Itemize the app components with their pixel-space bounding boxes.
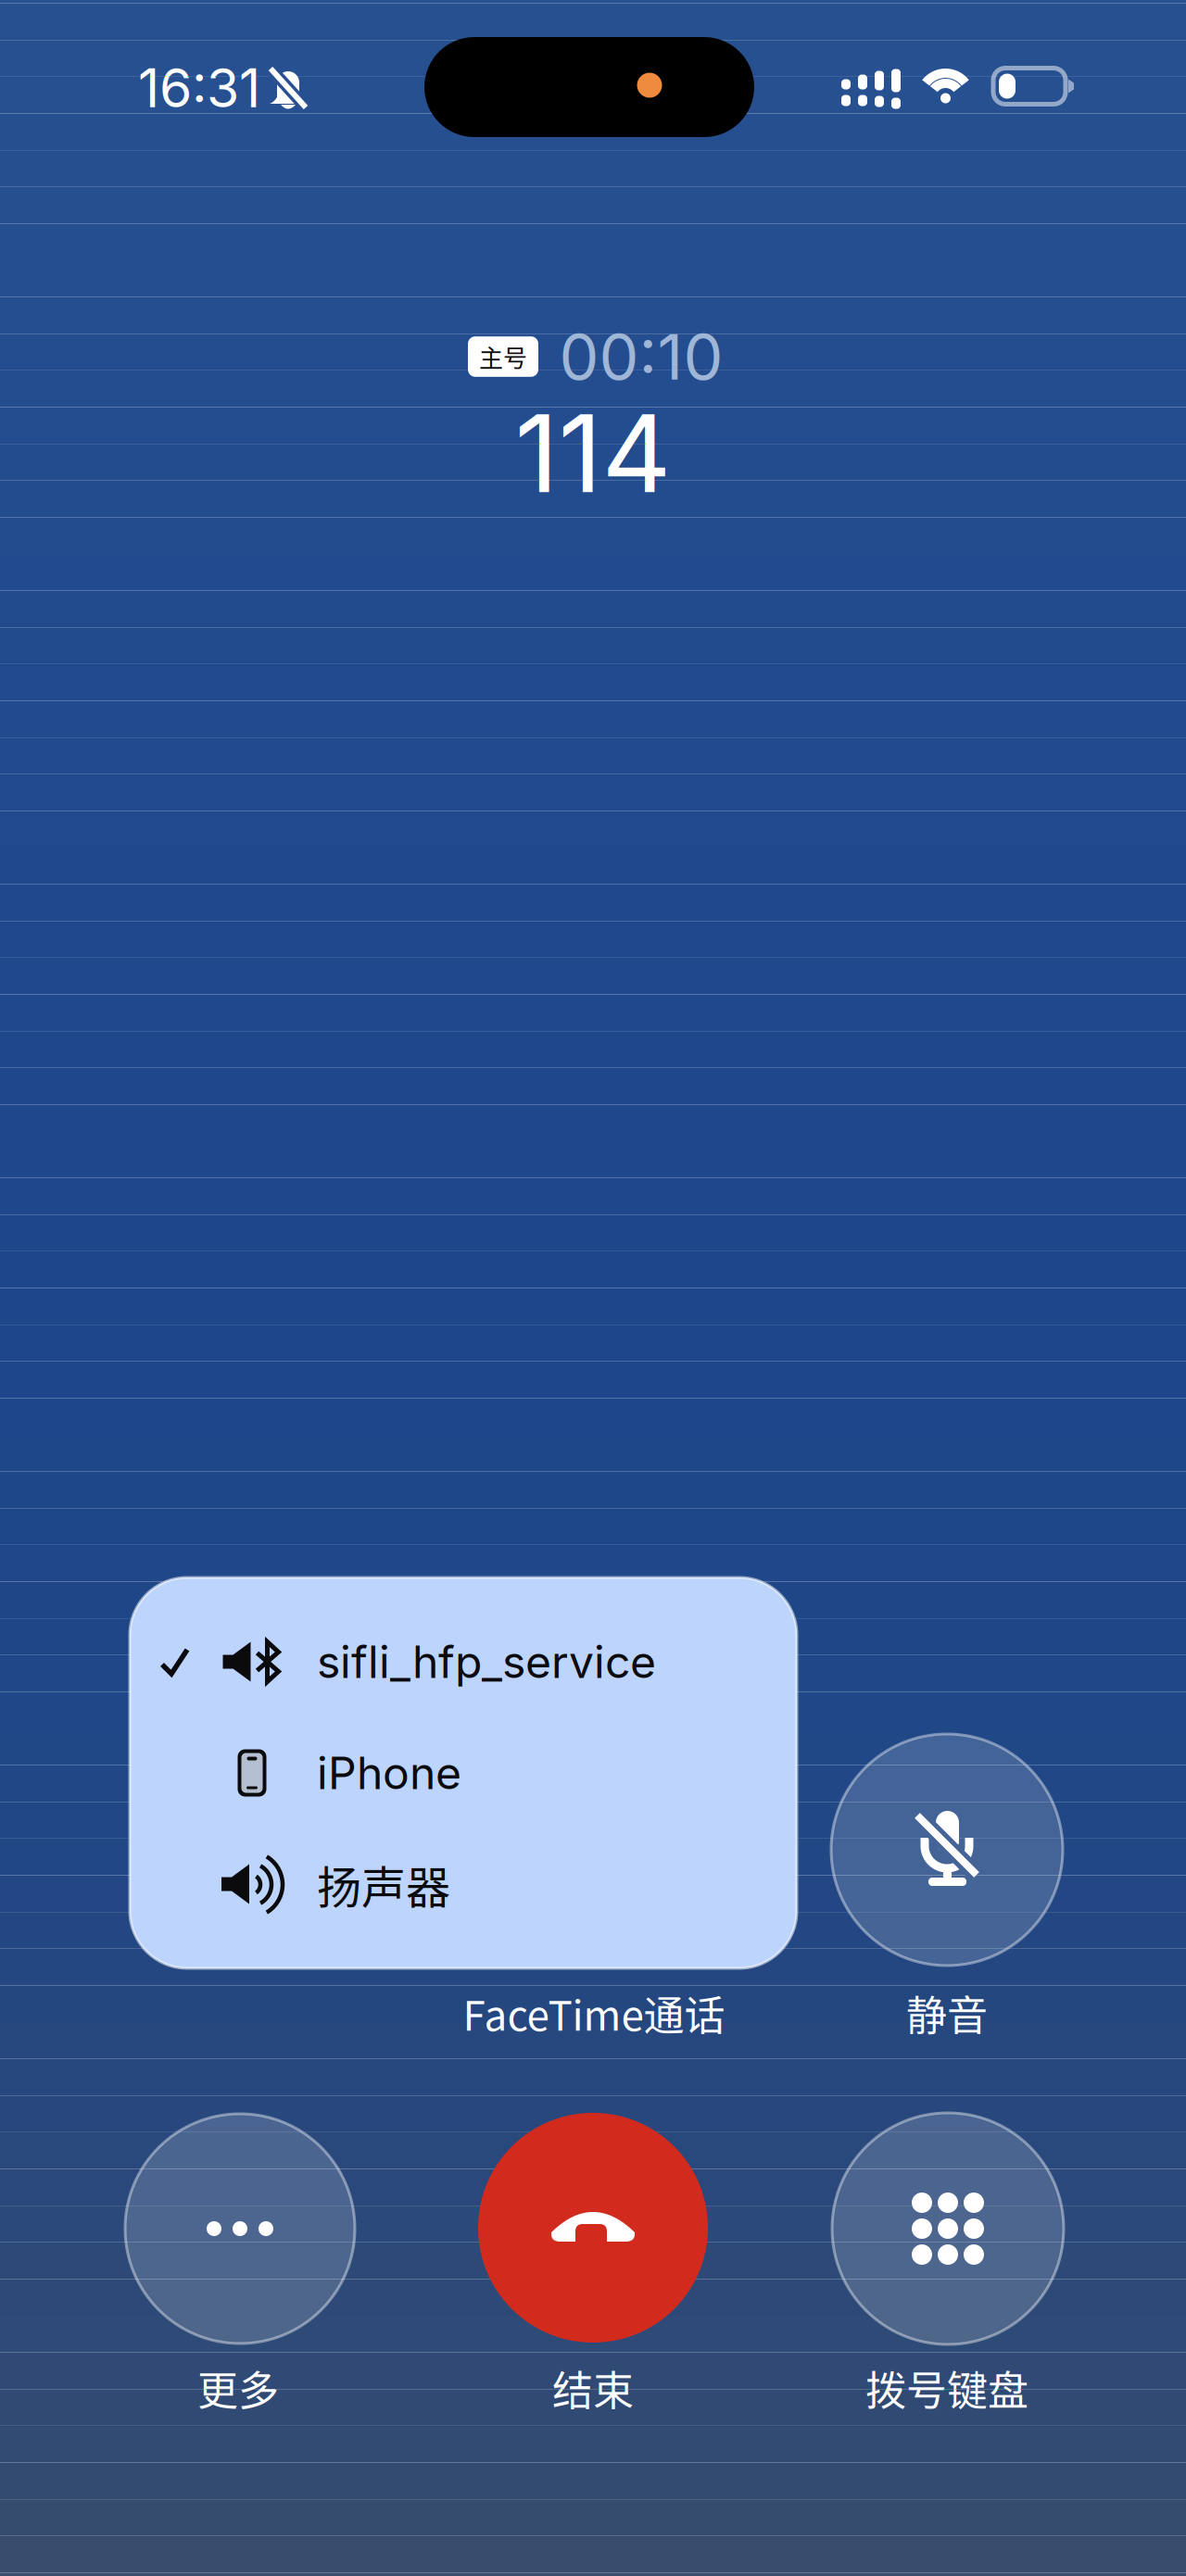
button[interactable]: sifli_hfp_service: [130, 1606, 797, 1717]
staticText: iPhone: [317, 1746, 461, 1800]
staticText: 静音: [906, 1983, 988, 2042]
staticText: 拨号键盘: [865, 2358, 1028, 2417]
button[interactable]: 更多: [125, 2114, 355, 2344]
staticText: 主号: [479, 339, 527, 374]
staticText: FaceTime通话: [463, 1983, 725, 2042]
staticText: 00:10: [559, 319, 723, 395]
staticText: 114: [515, 388, 671, 518]
staticText: 扬声器: [317, 1852, 450, 1916]
staticText: 16:31: [138, 56, 260, 120]
staticText: 结束: [552, 2358, 634, 2417]
button[interactable]: 拨号键盘: [832, 2113, 1064, 2344]
staticText: 更多: [197, 2358, 279, 2417]
button[interactable]: 静音: [831, 1734, 1063, 1966]
button[interactable]: 扬声器: [130, 1828, 797, 1940]
staticText: sifli_hfp_service: [317, 1635, 656, 1689]
button[interactable]: 结束通话: [478, 2113, 708, 2343]
button[interactable]: iPhone: [130, 1717, 797, 1828]
